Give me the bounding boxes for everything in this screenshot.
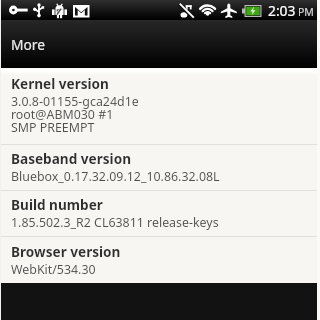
staticText: More <box>11 35 46 54</box>
button[interactable]: Build number <box>0 189 320 236</box>
staticText: Baseband version <box>11 149 131 168</box>
button[interactable]: Kernel version <box>0 68 320 144</box>
button[interactable]: More <box>0 20 320 68</box>
staticText: Bluebox_0.17.32.09.12_10.86.32.08L <box>11 170 220 183</box>
staticText: Build number <box>11 195 103 214</box>
staticText: Browser version <box>11 242 121 261</box>
staticText: WebKit/534.30 <box>11 263 96 276</box>
staticText: Kernel version <box>11 74 109 93</box>
staticText: 3.0.8-01155-gca24d1e root@ABM030 #1 SMP … <box>11 95 139 134</box>
staticText: 1.85.502.3_R2 CL63811 release-keys <box>11 216 219 229</box>
staticText: 2:03 <box>268 1 296 20</box>
button[interactable]: Browser version <box>0 236 320 283</box>
button[interactable]: Baseband version <box>0 143 320 190</box>
staticText: PM <box>298 5 314 19</box>
